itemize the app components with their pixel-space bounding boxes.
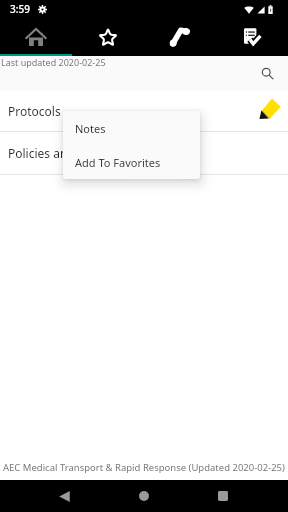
button[interactable]: Add To Favorites	[63, 145, 200, 179]
button[interactable]: Home	[124, 480, 164, 512]
button[interactable]: Home	[0, 18, 72, 56]
button[interactable]: Protocols	[0, 90, 288, 131]
staticText: Policies and Procedures	[8, 145, 142, 161]
button[interactable]: Checklist	[216, 18, 288, 56]
staticText: Add To Favorites	[75, 155, 161, 170]
button[interactable]: Search	[256, 62, 278, 84]
staticText: Last updated 2020-02-25	[1, 56, 106, 68]
staticText: Protocols	[8, 103, 61, 119]
button[interactable]: Favorites	[72, 18, 144, 56]
button[interactable]: Policies and Procedures	[0, 132, 288, 174]
button[interactable]: Recents	[203, 480, 243, 512]
staticText: 3:59	[10, 2, 30, 16]
button[interactable]: Edit	[257, 98, 283, 124]
button[interactable]: Call	[144, 18, 216, 56]
staticText: AEC Medical Transport & Rapid Response (…	[3, 461, 285, 474]
button[interactable]: Notes	[63, 111, 200, 145]
button[interactable]: Back	[44, 480, 84, 512]
staticText: Notes	[75, 121, 106, 136]
